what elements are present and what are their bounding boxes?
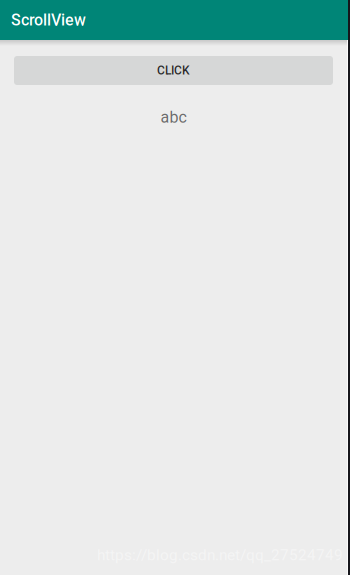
button[interactable]: CLICK xyxy=(14,56,333,85)
staticText: CLICK xyxy=(157,63,190,78)
staticText: ScrollView xyxy=(11,11,86,29)
staticText: abc xyxy=(160,108,186,127)
